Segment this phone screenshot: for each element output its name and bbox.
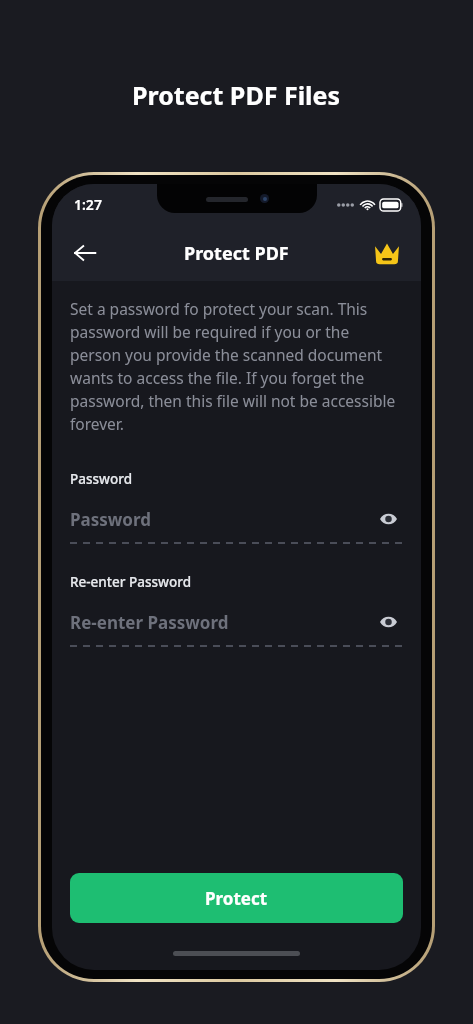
button[interactable]: Show password	[373, 504, 403, 534]
staticText: Set a password fo protect your scan. Thi…	[70, 298, 403, 435]
button[interactable]: Protect	[70, 873, 403, 923]
staticText: 1:27	[74, 195, 102, 214]
button[interactable]: Back	[62, 230, 108, 276]
button[interactable]: Premium	[365, 231, 409, 275]
staticText: Password	[70, 470, 133, 488]
staticText: Re-enter Password	[70, 611, 373, 634]
staticText: Protect	[205, 887, 268, 910]
staticText: Password	[70, 508, 373, 531]
button[interactable]: Show password	[373, 607, 403, 637]
staticText: Protect PDF	[184, 241, 289, 266]
staticText: Protect PDF Files	[132, 78, 341, 112]
staticText: Re-enter Password	[70, 573, 192, 591]
